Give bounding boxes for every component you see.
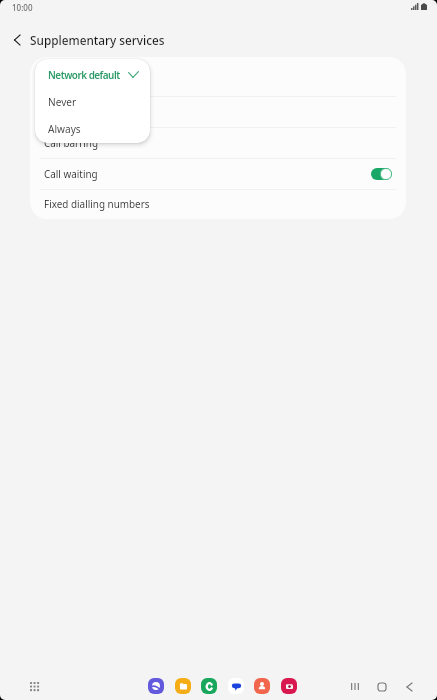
staticText: Never <box>48 95 77 109</box>
button[interactable]: Caller ID <box>30 57 406 96</box>
button[interactable]: Contacts <box>254 678 270 694</box>
button[interactable]: Call forwarding <box>30 97 406 127</box>
button[interactable]: Call barring <box>30 128 406 158</box>
button[interactable]: Recent apps <box>346 678 363 695</box>
button[interactable]: Never <box>35 88 150 115</box>
staticText: Network default <box>48 68 120 81</box>
button[interactable]: Home <box>373 678 390 695</box>
button[interactable]: Camera <box>281 678 297 694</box>
staticText: Always <box>48 122 81 136</box>
button[interactable]: All apps <box>25 677 43 695</box>
button[interactable]: Network default <box>35 61 150 88</box>
staticText: Call forwarding <box>44 105 115 118</box>
button[interactable]: Phone <box>201 678 217 694</box>
staticText: Caller ID <box>44 69 84 82</box>
button[interactable]: My Files <box>175 678 191 694</box>
button[interactable]: Internet <box>148 678 164 694</box>
button[interactable]: Always <box>35 115 150 142</box>
staticText: Call barring <box>44 136 99 149</box>
button[interactable]: Call waiting <box>30 159 406 189</box>
staticText: Fixed dialling numbers <box>44 197 150 210</box>
staticText: Supplementary services <box>30 32 165 48</box>
staticText: 10:00 <box>12 2 33 13</box>
staticText: Call waiting <box>44 167 98 180</box>
button[interactable]: Messages <box>228 678 244 694</box>
button[interactable]: Fixed dialling numbers <box>30 190 406 219</box>
button[interactable]: Navigate up <box>5 28 28 51</box>
button[interactable]: Back <box>401 678 418 695</box>
